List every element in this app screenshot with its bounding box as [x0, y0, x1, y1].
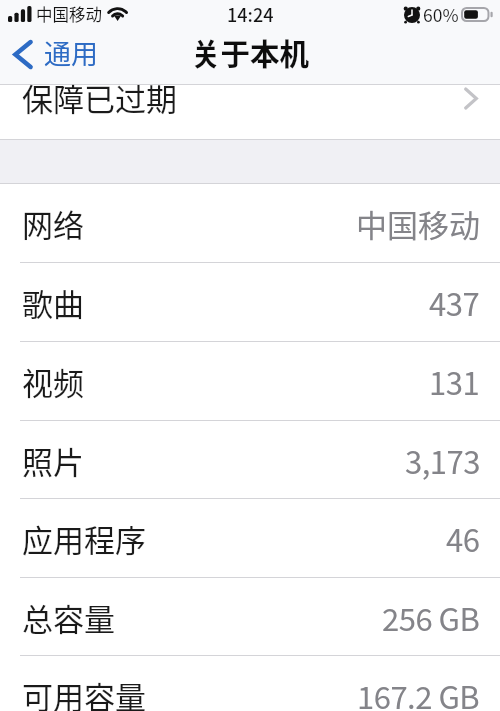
button[interactable]: 总容量	[0, 578, 500, 656]
staticText: 关于本机	[191, 31, 310, 74]
staticText: 167.2 GB	[357, 673, 480, 711]
staticText: 中国移动	[36, 2, 102, 26]
button[interactable]: 可用容量	[0, 656, 500, 711]
staticText: 照片	[22, 438, 84, 483]
staticText: 131	[429, 359, 480, 404]
button[interactable]: 保障已过期	[0, 85, 500, 139]
button[interactable]: 歌曲	[0, 263, 500, 342]
staticText: 60%	[423, 2, 459, 27]
staticText: 256 GB	[382, 595, 480, 640]
staticText: 应用程序	[22, 516, 146, 561]
staticText: 总容量	[22, 595, 115, 640]
staticText: 歌曲	[22, 280, 84, 325]
staticText: 437	[429, 280, 480, 325]
button[interactable]: Back to 通用	[0, 29, 109, 79]
staticText: 中国移动	[356, 201, 480, 246]
staticText: 网络	[22, 201, 84, 246]
button[interactable]: 照片	[0, 421, 500, 499]
button[interactable]: 网络	[0, 184, 500, 263]
other: More	[464, 88, 478, 109]
staticText: 3,173	[405, 438, 480, 483]
staticText: 视频	[22, 359, 84, 404]
staticText: 通用	[44, 33, 98, 72]
staticText: 可用容量	[22, 673, 146, 711]
staticText: 14:24	[227, 1, 274, 27]
staticText: 保障已过期	[22, 75, 177, 120]
button[interactable]: 应用程序	[0, 499, 500, 578]
button[interactable]: 视频	[0, 342, 500, 421]
staticText: 46	[446, 516, 480, 561]
